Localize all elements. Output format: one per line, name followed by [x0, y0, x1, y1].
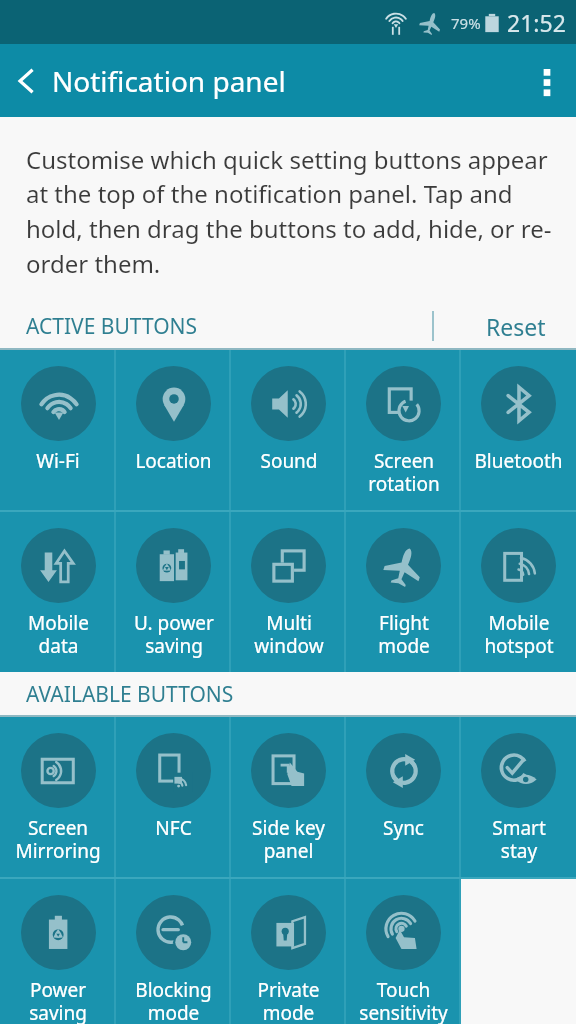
staticText: Screen Mirroring [15, 815, 101, 864]
button[interactable]: Power saving [0, 879, 116, 1024]
button[interactable]: Sound [231, 350, 346, 510]
button[interactable]: Wi-Fi [0, 350, 116, 510]
button[interactable]: Touch sensitivity [346, 879, 461, 1024]
staticText: Sound [260, 448, 318, 474]
button[interactable]: Smart stay [461, 717, 576, 877]
button[interactable]: U. power saving [116, 512, 231, 672]
staticText: ACTIVE BUTTONS [26, 312, 198, 341]
button[interactable]: More options [518, 44, 576, 117]
button[interactable]: NFC [116, 717, 231, 877]
staticText: Smart stay [492, 815, 546, 864]
button[interactable]: Flight mode [346, 512, 461, 672]
staticText: Bluetooth [474, 448, 563, 474]
staticText: Sync [383, 815, 424, 841]
staticText: Screen rotation [368, 448, 440, 497]
staticText: Touch sensitivity [359, 977, 448, 1024]
staticText: 79% [451, 13, 481, 33]
staticText: 21:52 [507, 7, 566, 38]
staticText: AVAILABLE BUTTONS [26, 680, 234, 709]
staticText: Power saving [29, 977, 87, 1024]
button[interactable]: Back [0, 44, 52, 117]
staticText: Customise which quick setting buttons ap… [26, 143, 554, 281]
staticText: Location [135, 448, 212, 474]
button[interactable]: Reset [434, 302, 576, 350]
staticText: Mobile data [28, 610, 89, 659]
button[interactable]: Screen rotation [346, 350, 461, 510]
button[interactable]: Private mode [231, 879, 346, 1024]
button[interactable]: Sync [346, 717, 461, 877]
staticText: Private mode [257, 977, 320, 1024]
staticText: Side key panel [252, 815, 325, 864]
staticText: Reset [486, 311, 546, 342]
button[interactable]: Bluetooth [461, 350, 576, 510]
staticText: Mobile hotspot [484, 610, 554, 659]
staticText: Flight mode [378, 610, 430, 659]
staticText: Blocking mode [135, 977, 212, 1024]
button[interactable]: Blocking mode [116, 879, 231, 1024]
staticText: NFC [155, 815, 192, 841]
button[interactable]: Mobile data [0, 512, 116, 672]
button[interactable]: Side key panel [231, 717, 346, 877]
staticText: Notification panel [52, 62, 286, 100]
button[interactable]: Screen Mirroring [0, 717, 116, 877]
staticText: U. power saving [134, 610, 214, 659]
button[interactable]: Multi window [231, 512, 346, 672]
staticText: Wi-Fi [36, 448, 80, 474]
staticText: Multi window [254, 610, 324, 659]
button[interactable]: Mobile hotspot [461, 512, 576, 672]
button[interactable]: Location [116, 350, 231, 510]
